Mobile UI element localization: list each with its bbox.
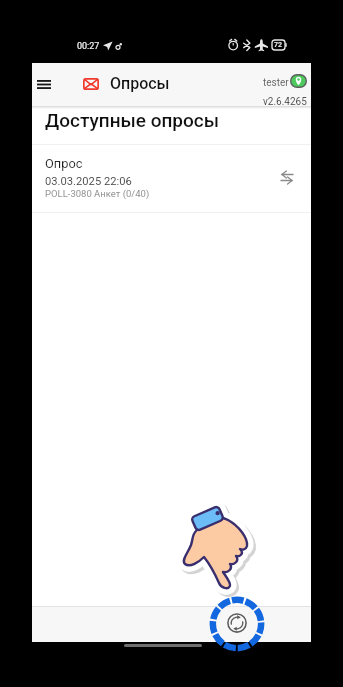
staticText: 03.03.2025 22:06 bbox=[45, 175, 132, 188]
button[interactable]: Transfer bbox=[275, 165, 299, 189]
staticText: Опросы bbox=[110, 74, 170, 93]
button[interactable]: Location bbox=[290, 74, 307, 88]
button[interactable]: Menu bbox=[32, 71, 58, 97]
staticText: 72 bbox=[274, 41, 282, 49]
staticText: Доступные опросы bbox=[45, 109, 219, 131]
staticText: POLL-3080 Анкет (0/40) bbox=[45, 188, 150, 199]
staticText: 00:27 bbox=[77, 41, 100, 52]
staticText: v2.6.4265 bbox=[263, 96, 307, 108]
button[interactable]: Sync bbox=[223, 609, 251, 637]
button[interactable]: Опрос bbox=[32, 145, 311, 212]
staticText: tester bbox=[263, 77, 289, 89]
staticText: Опрос bbox=[45, 156, 83, 171]
